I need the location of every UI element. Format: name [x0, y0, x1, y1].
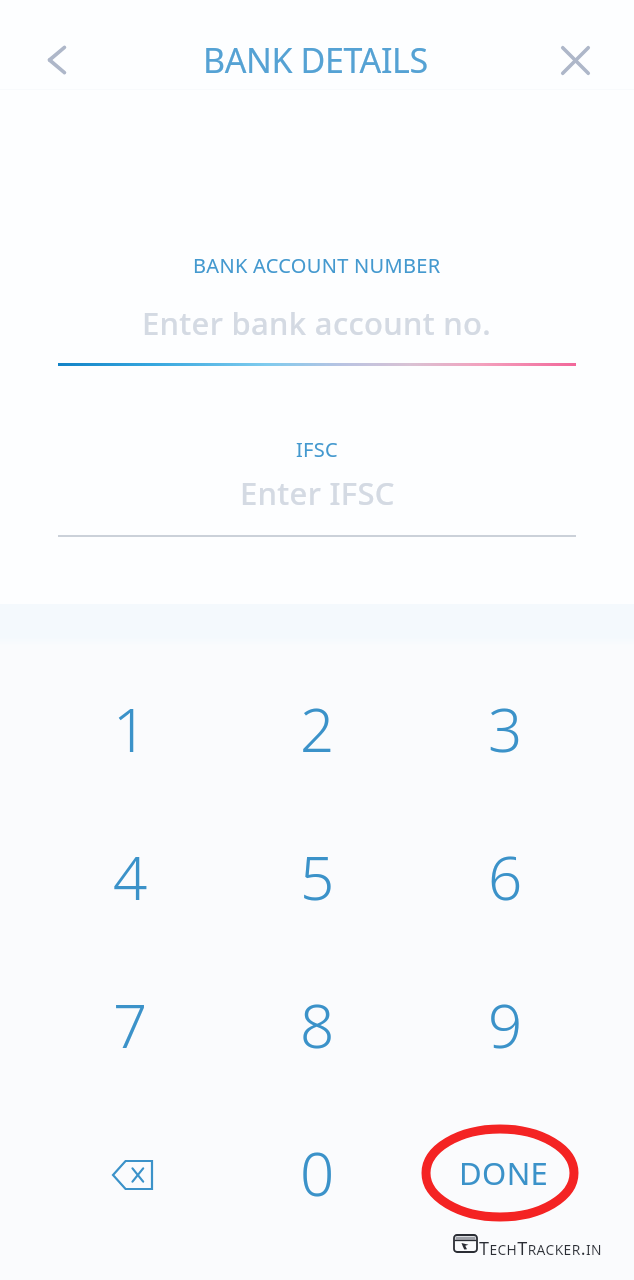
staticText: TECHTRACKER.IN — [479, 1236, 602, 1261]
button[interactable]: 5 — [212, 803, 423, 951]
staticText: 0 — [300, 1132, 335, 1214]
button[interactable]: 6 — [423, 803, 634, 951]
staticText: IFSC — [296, 436, 338, 463]
button[interactable]: 3 — [423, 655, 634, 803]
staticText: 4 — [113, 836, 148, 918]
button[interactable]: Backspace — [0, 1099, 212, 1247]
staticText: 9 — [488, 984, 523, 1066]
staticText: 6 — [488, 836, 523, 918]
staticText: Enter bank account no. — [142, 302, 492, 344]
button[interactable]: 4 — [0, 803, 212, 951]
button[interactable]: DONE — [423, 1099, 634, 1247]
button[interactable]: 7 — [0, 951, 212, 1099]
button[interactable]: 9 — [423, 951, 634, 1099]
button[interactable]: Close — [517, 0, 634, 120]
staticText: 1 — [113, 688, 148, 770]
staticText: 7 — [113, 984, 148, 1066]
staticText: 5 — [300, 836, 335, 918]
staticText: BANK ACCOUNT NUMBER — [193, 252, 441, 279]
button[interactable]: 1 — [0, 655, 212, 803]
button[interactable]: 0 — [212, 1099, 423, 1247]
button[interactable]: 2 — [212, 655, 423, 803]
staticText: DONE — [459, 1152, 549, 1194]
staticText: 8 — [300, 984, 335, 1066]
staticText: 3 — [488, 688, 523, 770]
staticText: 2 — [300, 688, 335, 770]
button[interactable]: Back — [0, 0, 113, 120]
button[interactable]: 8 — [212, 951, 423, 1099]
staticText: Enter IFSC — [240, 472, 395, 514]
staticText: BANK DETAILS — [203, 37, 428, 83]
